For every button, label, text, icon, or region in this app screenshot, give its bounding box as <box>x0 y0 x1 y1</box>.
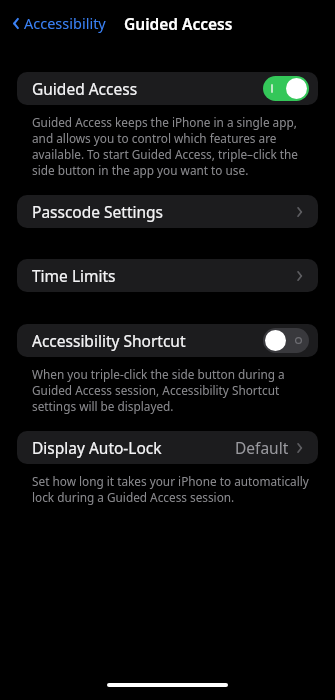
staticText: Guided Access keeps the iPhone in a sing… <box>32 114 309 178</box>
button[interactable]: Accessibility Shortcut <box>17 324 318 357</box>
staticText: Passcode Settings <box>32 201 164 222</box>
button[interactable]: Display Auto-Lock <box>17 431 318 464</box>
button[interactable]: Guided Access <box>17 72 318 105</box>
staticText: Default <box>235 437 289 458</box>
staticText: Accessibility Shortcut <box>32 330 186 351</box>
staticText: Time Limits <box>32 265 116 286</box>
button[interactable]: Passcode Settings <box>17 195 318 228</box>
button[interactable]: Accessibility <box>6 9 110 37</box>
staticText: Set how long it takes your iPhone to aut… <box>32 473 309 505</box>
staticText: Accessibility <box>24 13 106 33</box>
button[interactable]: Time Limits <box>17 259 318 292</box>
staticText: Guided Access <box>32 78 138 99</box>
staticText: When you triple-click the side button du… <box>32 366 309 414</box>
staticText: Display Auto-Lock <box>32 437 162 458</box>
button[interactable] <box>263 328 309 353</box>
staticText: Guided Access <box>124 13 233 34</box>
button[interactable] <box>263 76 309 101</box>
